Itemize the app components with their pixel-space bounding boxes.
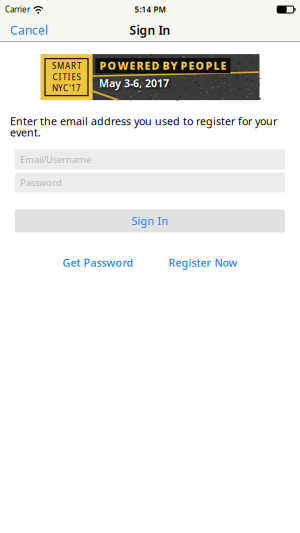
staticText: C I T I E S bbox=[52, 72, 80, 82]
staticText: S M A R T bbox=[52, 61, 81, 71]
staticText: Get Password bbox=[62, 255, 133, 270]
staticText: Password bbox=[20, 176, 62, 189]
button[interactable]: Cancel bbox=[10, 22, 48, 38]
staticText: P O W E R E D B Y P E O P L E bbox=[99, 59, 226, 73]
staticText: event. bbox=[10, 125, 41, 139]
button[interactable]: Email/Username bbox=[15, 149, 285, 169]
staticText: May 3-6, 2017 bbox=[99, 76, 169, 90]
staticText: 5:14 PM bbox=[134, 4, 165, 15]
staticText: Carrier bbox=[5, 4, 30, 15]
staticText: Enter the email address you used to regi… bbox=[10, 114, 277, 128]
staticText: Register Now bbox=[168, 255, 237, 270]
button[interactable]: Register Now bbox=[168, 255, 237, 270]
staticText: Sign In bbox=[129, 22, 170, 38]
staticText: Email/Username bbox=[20, 153, 91, 166]
button[interactable]: Get Password bbox=[62, 255, 133, 270]
staticText: Cancel bbox=[10, 22, 48, 38]
staticText: Sign In bbox=[131, 214, 168, 228]
button[interactable]: Password bbox=[15, 172, 285, 192]
staticText: NYC '17 bbox=[52, 83, 81, 93]
button[interactable]: Sign In bbox=[15, 209, 285, 232]
